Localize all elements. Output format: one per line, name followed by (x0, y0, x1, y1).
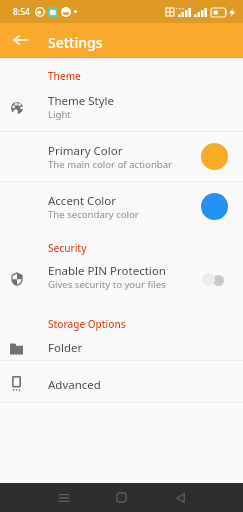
staticText: The secondary color (48, 208, 139, 221)
staticText: Security (48, 241, 87, 255)
button[interactable]: Recent apps (43, 485, 84, 510)
staticText: Storage Options (48, 317, 126, 331)
staticText: Accent Color (48, 193, 117, 209)
staticText: Theme (48, 69, 81, 83)
button[interactable] (4, 266, 29, 291)
staticText: Settings (48, 33, 103, 52)
staticText: The main color of actionbar (48, 158, 173, 171)
staticText: Light (48, 108, 71, 121)
staticText: Theme Style (48, 93, 114, 109)
staticText: Primary Color (48, 143, 123, 159)
button[interactable]: Navigate up (8, 28, 32, 52)
button[interactable]: Home (101, 485, 142, 510)
staticText: Advanced (48, 377, 101, 393)
staticText: Gives security to your files (48, 278, 166, 291)
button[interactable] (4, 95, 29, 120)
staticText: Enable PIN Protection (48, 263, 166, 279)
button[interactable]: Back (160, 485, 201, 510)
button[interactable]: Primary color swatch (201, 143, 228, 170)
staticText: Folder (48, 340, 83, 356)
button[interactable]: Accent color swatch (201, 193, 228, 220)
button[interactable]: Enable PIN Protection toggle (201, 272, 227, 288)
button[interactable] (4, 336, 29, 361)
button[interactable] (4, 371, 29, 396)
staticText: 8:54 (13, 6, 30, 18)
